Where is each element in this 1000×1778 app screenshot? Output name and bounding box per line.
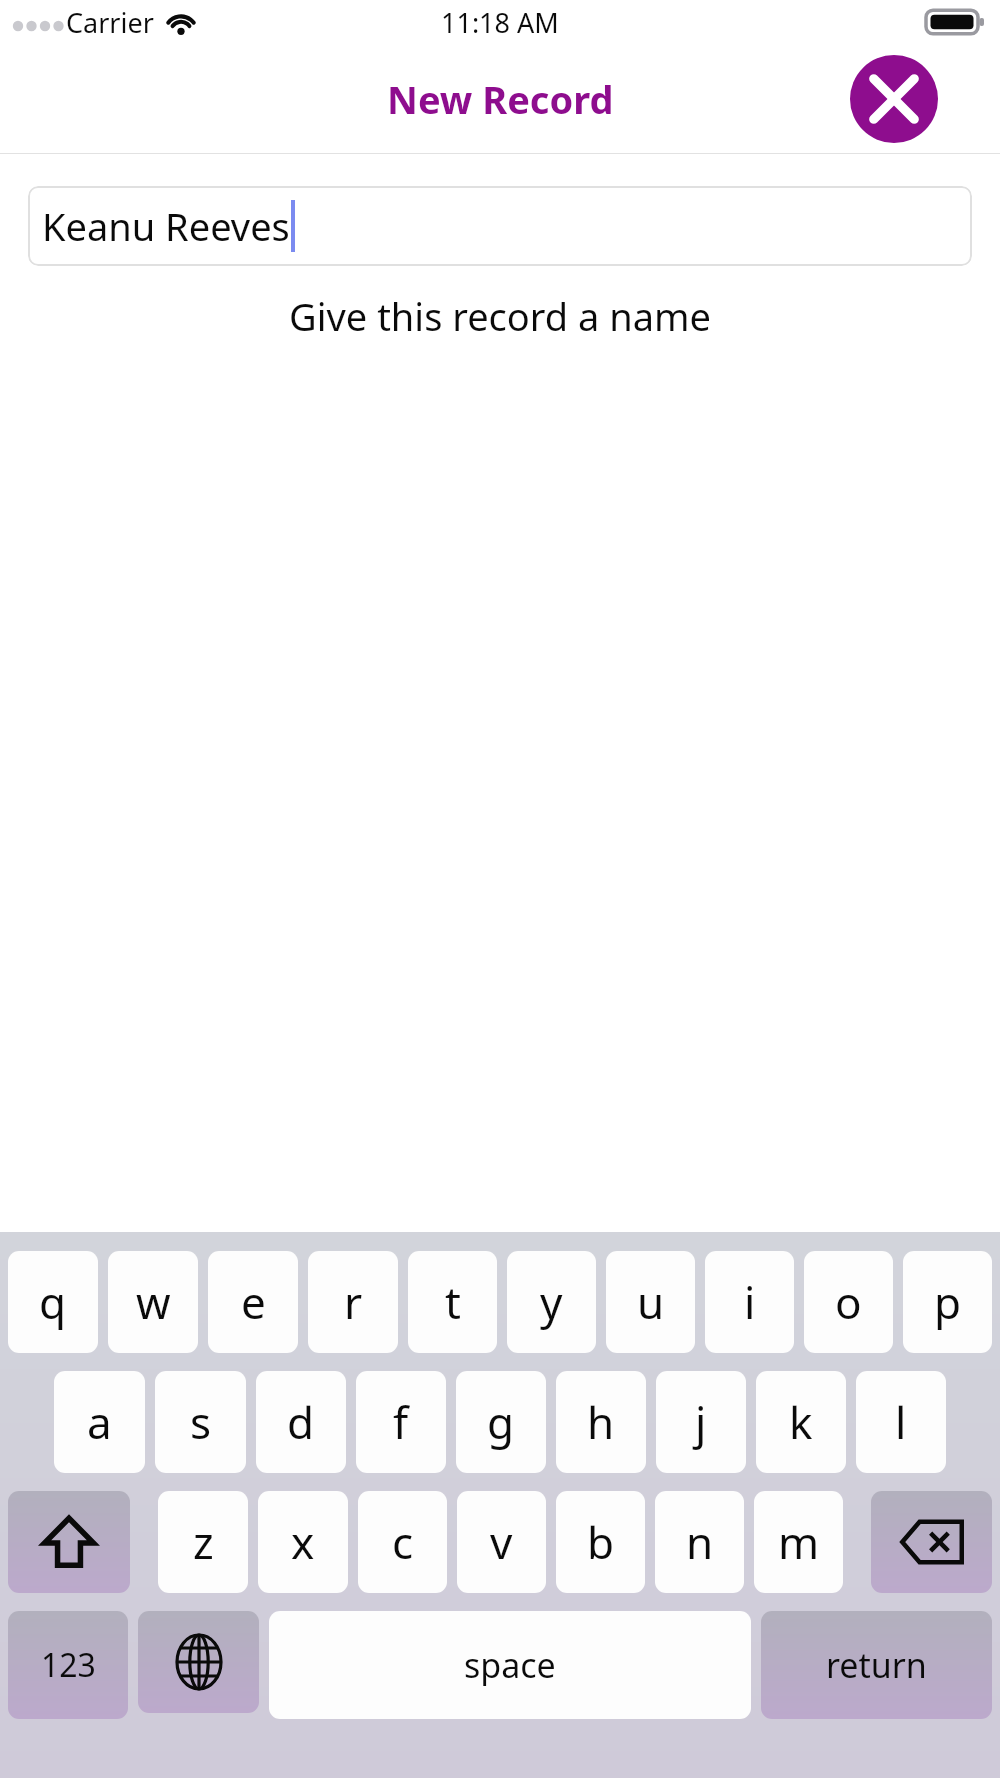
button[interactable]: n (655, 1491, 744, 1593)
button[interactable]: v (457, 1491, 546, 1593)
staticText: u (637, 1272, 665, 1332)
button[interactable]: r (308, 1251, 398, 1353)
staticText: t (445, 1272, 461, 1332)
button[interactable]: j (656, 1371, 746, 1473)
staticText: f (393, 1392, 409, 1452)
button[interactable]: u (606, 1251, 695, 1353)
button[interactable]: Keanu Reeves (28, 186, 972, 266)
staticText: c (392, 1512, 414, 1572)
staticText: d (287, 1392, 315, 1452)
staticText: return (826, 1642, 927, 1688)
button[interactable]: g (456, 1371, 546, 1473)
staticText: i (744, 1272, 756, 1332)
button[interactable]: 123 (8, 1611, 128, 1719)
staticText: w (136, 1272, 171, 1332)
button[interactable]: x (258, 1491, 348, 1593)
staticText: 11:18 AM (441, 4, 559, 41)
button[interactable]: return (761, 1611, 992, 1719)
staticText: l (895, 1392, 907, 1452)
button[interactable]: z (158, 1491, 248, 1593)
staticText: q (39, 1272, 67, 1332)
staticText: a (87, 1392, 112, 1452)
button[interactable]: q (8, 1251, 98, 1353)
button[interactable]: k (756, 1371, 846, 1473)
staticText: 123 (41, 1643, 96, 1687)
button[interactable]: m (754, 1491, 843, 1593)
button[interactable]: e (208, 1251, 298, 1353)
staticText: New Record (387, 73, 614, 125)
staticText: s (190, 1392, 212, 1452)
staticText: r (344, 1272, 363, 1332)
button[interactable]: c (358, 1491, 447, 1593)
button[interactable]: f (356, 1371, 446, 1473)
button[interactable]: l (856, 1371, 946, 1473)
staticText: Give this record a name (0, 290, 1000, 342)
button[interactable]: o (804, 1251, 893, 1353)
staticText: space (464, 1642, 556, 1688)
button[interactable]: h (556, 1371, 646, 1473)
staticText: Keanu Reeves (42, 200, 290, 252)
staticText: j (695, 1392, 707, 1452)
button[interactable]: a (54, 1371, 145, 1473)
button[interactable]: Backspace (871, 1491, 992, 1593)
button[interactable]: space (269, 1611, 751, 1719)
button[interactable]: y (507, 1251, 596, 1353)
button[interactable]: t (408, 1251, 497, 1353)
button[interactable]: d (256, 1371, 346, 1473)
staticText: m (778, 1512, 820, 1572)
staticText: b (587, 1512, 615, 1572)
button[interactable]: Shift (8, 1491, 130, 1593)
staticText: p (934, 1272, 962, 1332)
staticText: v (490, 1512, 513, 1572)
button[interactable]: s (155, 1371, 246, 1473)
staticText: n (686, 1512, 714, 1572)
button[interactable]: i (705, 1251, 794, 1353)
button[interactable]: Switch keyboard (138, 1611, 259, 1713)
button[interactable]: b (556, 1491, 645, 1593)
staticText: y (540, 1272, 563, 1332)
staticText: x (291, 1512, 315, 1572)
staticText: z (193, 1512, 214, 1572)
staticText: g (487, 1392, 515, 1452)
staticText: Carrier (66, 4, 154, 41)
button[interactable]: Close (850, 55, 938, 143)
button[interactable]: w (108, 1251, 198, 1353)
staticText: h (587, 1392, 615, 1452)
button[interactable]: p (903, 1251, 992, 1353)
staticText: k (789, 1392, 813, 1452)
staticText: e (241, 1272, 266, 1332)
staticText: o (835, 1272, 862, 1332)
